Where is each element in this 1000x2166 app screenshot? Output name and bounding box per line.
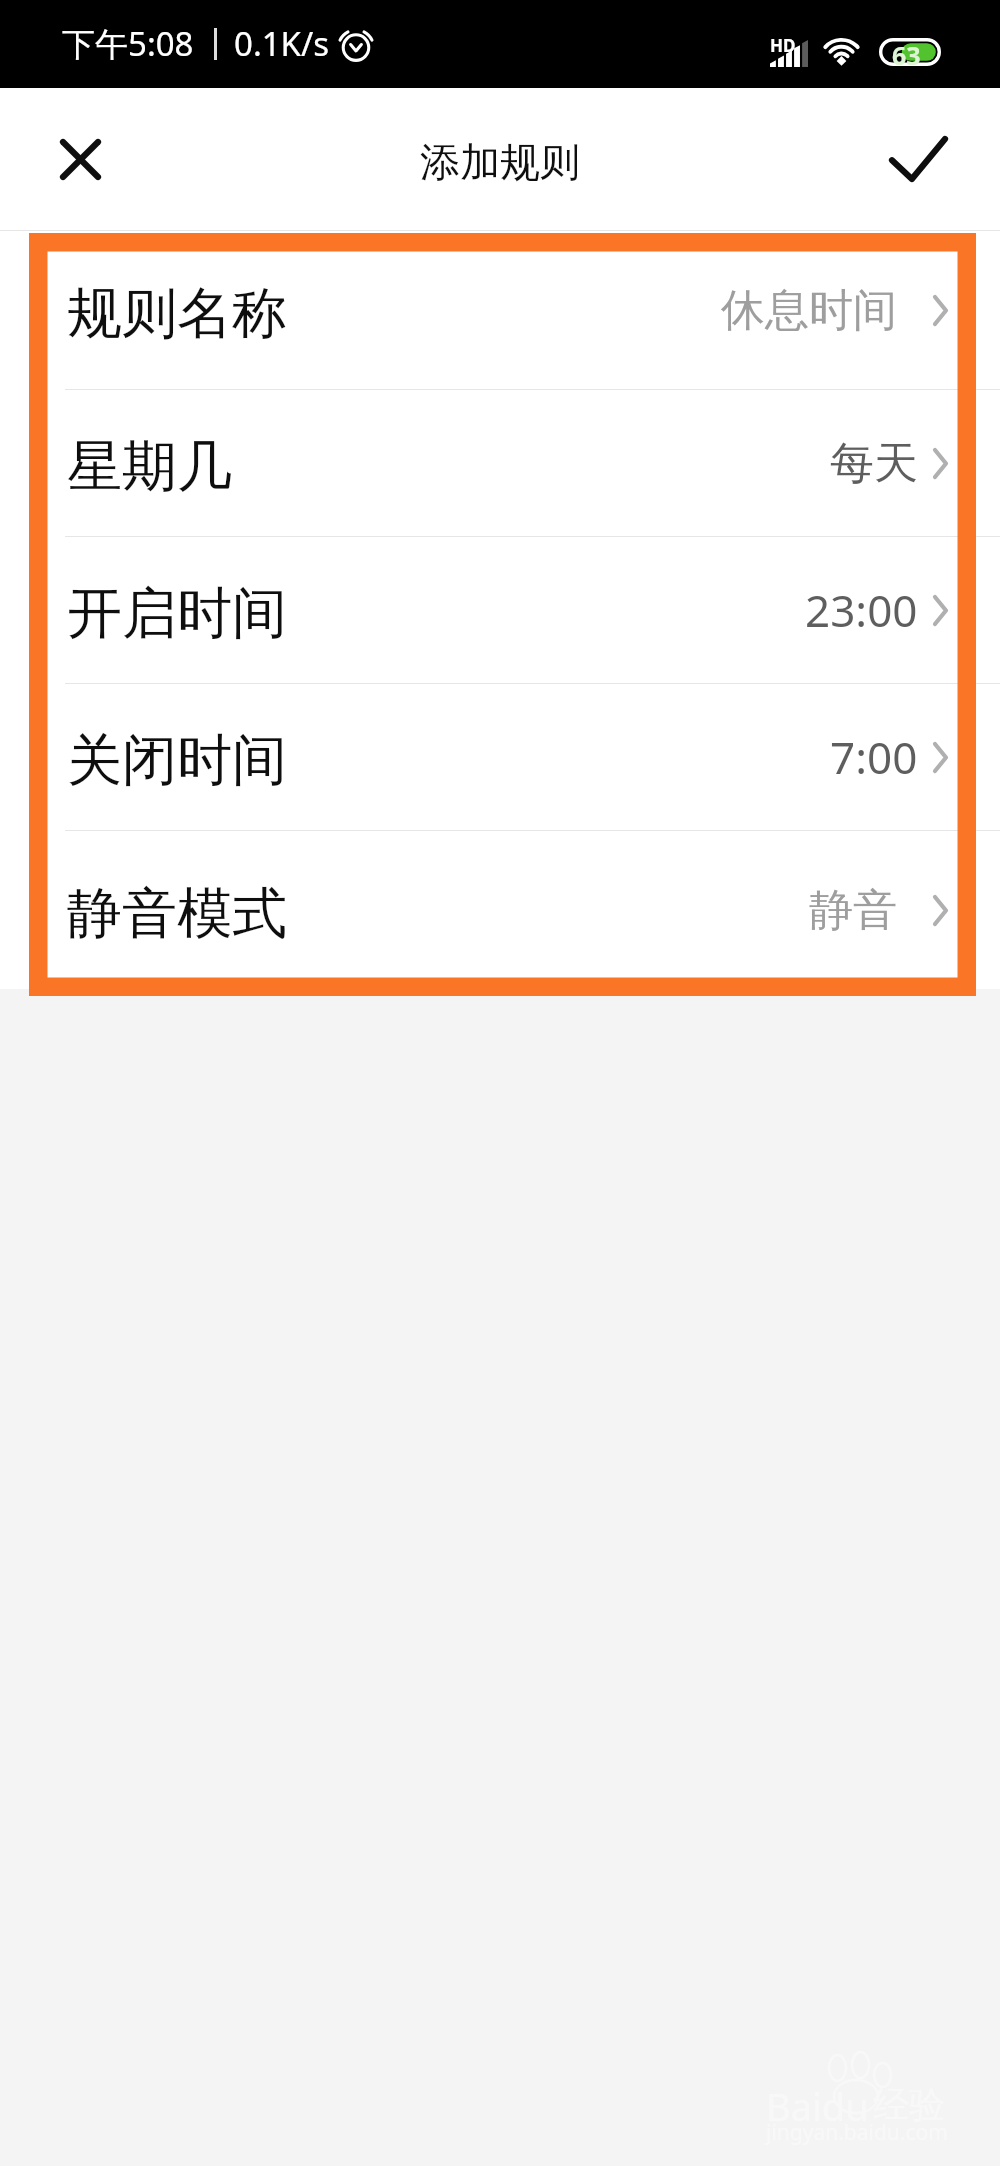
staticText: 每天 [830,436,918,491]
button[interactable]: 关闭时间 [0,684,1000,830]
staticText: 23:00 [805,580,918,640]
staticText: 63 [892,38,921,66]
button[interactable]: 规则名称 [0,231,1000,389]
button[interactable]: 静音模式 [0,831,1000,989]
staticText: 静音 [809,883,897,938]
button[interactable]: 星期几 [0,390,1000,536]
button[interactable]: Confirm [872,113,964,205]
staticText: 开启时间 [67,579,287,648]
button[interactable]: Close [34,113,126,205]
staticText: 休息时间 [721,283,897,338]
staticText: 0.1K/s [234,21,330,66]
staticText: 7:00 [830,727,918,787]
staticText: 规则名称 [67,279,287,348]
staticText: 添加规则 [420,137,580,187]
staticText: 静音模式 [67,879,287,948]
staticText: 星期几 [67,432,232,501]
staticText: 关闭时间 [67,726,287,795]
button[interactable]: 开启时间 [0,537,1000,683]
staticText: 下午5:08 [62,21,194,66]
staticText: HD [770,34,796,57]
